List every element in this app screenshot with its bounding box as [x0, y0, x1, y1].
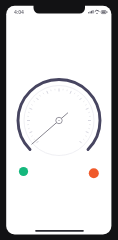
button[interactable]: Start	[19, 167, 29, 177]
button[interactable]: Stop	[89, 168, 100, 179]
staticText: 4:04	[14, 9, 24, 16]
